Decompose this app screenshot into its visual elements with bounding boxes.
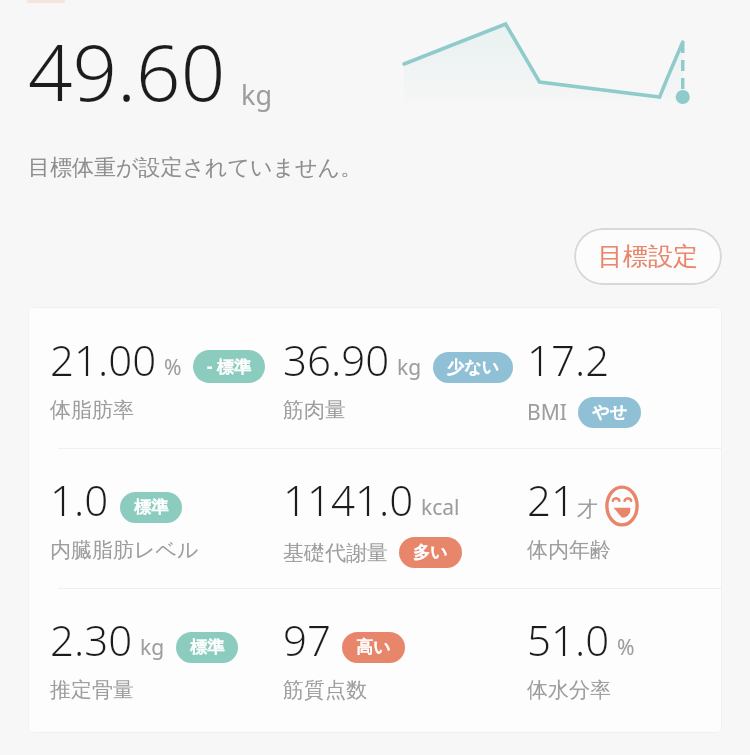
staticText: 17.2	[527, 331, 610, 388]
button[interactable]: 36.90	[283, 331, 527, 423]
staticText: 筋質点数	[283, 677, 367, 703]
staticText: 1.0	[50, 471, 109, 528]
staticText: 標準	[190, 637, 224, 658]
staticText: 筋肉量	[283, 397, 346, 423]
staticText: 51.0	[527, 611, 610, 668]
button[interactable]: 21	[527, 471, 714, 563]
staticText: 体水分率	[527, 677, 611, 703]
button[interactable]: 目標設定	[574, 228, 722, 285]
staticText: 1141.0	[283, 471, 414, 528]
staticText: - 標準	[207, 355, 251, 378]
staticText: kg	[140, 633, 165, 662]
staticText: %	[164, 353, 182, 382]
staticText: 97	[283, 611, 331, 668]
staticText: kg	[241, 76, 273, 113]
staticText: 21	[527, 471, 575, 528]
staticText: 21.00	[50, 331, 157, 388]
button[interactable]: 97	[283, 611, 527, 703]
staticText: 多い	[413, 542, 448, 563]
staticText: 才	[577, 496, 598, 522]
staticText: やせ	[592, 402, 627, 423]
staticText: 2.30	[50, 611, 133, 668]
staticText: kcal	[421, 493, 460, 522]
button[interactable]: 21.00	[50, 331, 283, 423]
staticText: 標準	[134, 497, 168, 518]
staticText: BMI	[527, 398, 567, 427]
staticText: 推定骨量	[50, 677, 134, 703]
staticText: 36.90	[283, 331, 390, 388]
staticText: 少ない	[447, 357, 499, 378]
staticText: kg	[397, 353, 422, 382]
button[interactable]: 1141.0	[283, 471, 527, 568]
other: 体内年齢	[601, 485, 643, 527]
button[interactable]: 51.0	[527, 611, 714, 703]
button[interactable]: 17.2	[527, 331, 714, 428]
button[interactable]: 1.0	[50, 471, 283, 563]
button[interactable]: 2.30	[50, 611, 283, 703]
staticText: 内臓脂肪レベル	[50, 537, 199, 563]
staticText: 基礎代謝量	[283, 540, 388, 566]
staticText: 高い	[356, 637, 391, 658]
staticText: 体脂肪率	[50, 397, 134, 423]
staticText: 体内年齢	[527, 537, 611, 563]
staticText: 49.60	[28, 18, 226, 124]
staticText: %	[617, 633, 635, 662]
staticText: 目標体重が設定されていません。	[28, 154, 363, 182]
staticText: 目標設定	[598, 241, 698, 272]
